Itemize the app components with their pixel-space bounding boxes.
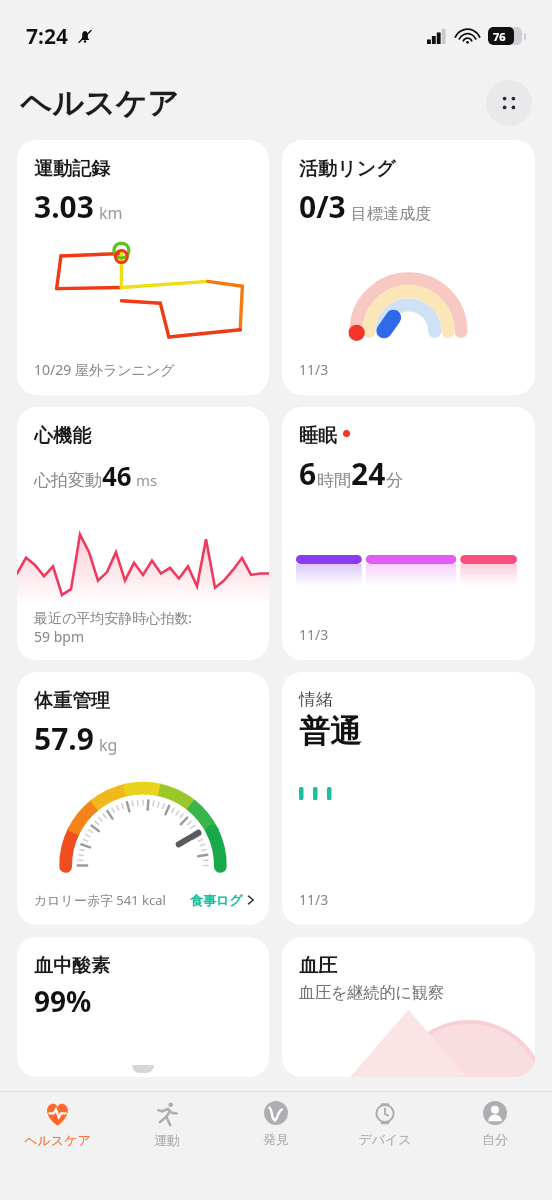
button[interactable]: 運動 (115, 1092, 219, 1170)
staticText: 心機能 (34, 424, 91, 448)
button[interactable]: 自分 (443, 1092, 547, 1170)
staticText: 11/3 (299, 360, 329, 379)
button[interactable]: 情緒 (282, 672, 535, 925)
staticText: 体重管理 (34, 689, 110, 713)
button[interactable]: デバイス (333, 1092, 437, 1170)
staticText: ヘルスケア (24, 1132, 91, 1148)
staticText: km (99, 202, 123, 224)
button[interactable]: 心機能 (17, 407, 269, 660)
button[interactable]: 食事ログ (190, 892, 256, 908)
button[interactable]: 血中酸素 (17, 937, 269, 1077)
staticText: 10/29 屋外ランニング (34, 360, 175, 379)
staticText: 血圧 (299, 954, 337, 978)
staticText: カロリー赤字 541 kcal (34, 891, 166, 909)
button[interactable]: 睡眠 (282, 407, 535, 660)
staticText: 0/3 (299, 186, 346, 227)
button[interactable]: 運動記録 (17, 140, 269, 395)
staticText: 6 (299, 453, 317, 494)
button[interactable]: 発見 (224, 1092, 328, 1170)
staticText: 自分 (482, 1131, 508, 1147)
staticText: 睡眠 (299, 424, 337, 448)
button[interactable]: ヘルスケア (5, 1092, 109, 1170)
staticText: 11/3 (299, 890, 329, 909)
staticText: ヘルスケア (20, 84, 179, 123)
staticText: kg (99, 734, 118, 756)
button[interactable]: 活動リング (282, 140, 535, 395)
button[interactable]: More options (486, 80, 532, 126)
staticText: 59 bpm (34, 627, 84, 646)
staticText: 運動 (154, 1132, 180, 1148)
staticText: 発見 (263, 1131, 289, 1147)
staticText: 24 (351, 453, 386, 494)
staticText: 46 (102, 458, 132, 493)
staticText: 時間 (317, 470, 351, 491)
staticText: 99% (34, 982, 92, 1020)
staticText: 目標達成度 (351, 204, 431, 224)
staticText: 普通 (299, 712, 361, 751)
staticText: 76 (493, 29, 506, 44)
staticText: 7:24 (26, 22, 68, 51)
button[interactable]: 体重管理 (17, 672, 269, 925)
staticText: 運動記録 (34, 157, 110, 181)
staticText: 血圧を継続的に観察 (299, 983, 444, 1003)
staticText: デバイス (358, 1131, 412, 1147)
staticText: 57.9 (34, 718, 94, 759)
staticText: 血中酸素 (34, 954, 110, 978)
staticText: 心拍変動 (34, 470, 102, 491)
staticText: 活動リング (299, 157, 396, 181)
staticText: 11/3 (299, 625, 329, 644)
button[interactable]: 血圧 (282, 937, 535, 1077)
staticText: 食事ログ (190, 892, 243, 908)
staticText: 最近の平均安静時心拍数: (34, 608, 193, 627)
staticText: ms (136, 470, 158, 490)
staticText: 3.03 (34, 186, 94, 227)
staticText: 情緒 (299, 689, 333, 710)
staticText: 分 (386, 470, 403, 491)
